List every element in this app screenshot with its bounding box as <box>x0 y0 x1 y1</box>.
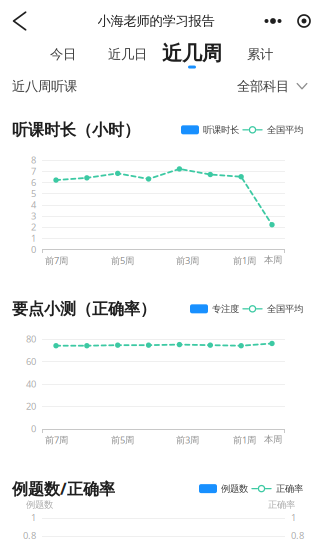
staticText: 累计 <box>247 46 273 62</box>
button[interactable]: More <box>259 10 287 32</box>
staticText: 5 <box>31 187 36 200</box>
staticText: 前3周 <box>176 254 199 267</box>
staticText: 例题数 <box>221 483 248 494</box>
staticText: 本周 <box>264 434 282 445</box>
staticText: 前1周 <box>233 254 256 267</box>
staticText: 前3周 <box>176 434 199 446</box>
staticText: 前1周 <box>233 434 256 446</box>
staticText: 2 <box>31 221 36 233</box>
staticText: 全部科目 <box>237 78 289 94</box>
button[interactable]: 近几周 <box>162 41 222 69</box>
button[interactable]: 累计 <box>247 46 273 65</box>
staticText: 80 <box>26 333 36 345</box>
staticText: 全国平均 <box>267 124 303 136</box>
staticText: 0.8 <box>291 529 304 542</box>
staticText: 7 <box>31 165 36 177</box>
staticText: 近几日 <box>108 46 147 62</box>
staticText: 60 <box>26 355 36 368</box>
staticText: 本周 <box>264 254 282 266</box>
staticText: 前7周 <box>45 434 68 446</box>
staticText: 1 <box>31 232 36 244</box>
button[interactable]: 今日 <box>50 46 76 65</box>
staticText: 近几周 <box>162 41 222 66</box>
staticText: 8 <box>31 154 36 166</box>
staticText: 听课时长 <box>203 124 239 136</box>
staticText: 0 <box>31 422 36 435</box>
staticText: 正确率 <box>268 499 295 510</box>
staticText: 前5周 <box>111 254 134 267</box>
staticText: 0 <box>31 243 36 255</box>
staticText: 正确率 <box>276 483 303 494</box>
staticText: 听课时长（小时） <box>12 120 140 140</box>
staticText: 专注度 <box>212 303 239 315</box>
staticText: 1 <box>291 511 296 524</box>
staticText: 要点小测（正确率） <box>12 299 156 319</box>
staticText: 40 <box>26 378 36 390</box>
staticText: 6 <box>31 176 36 188</box>
staticText: 3 <box>31 210 36 222</box>
button[interactable]: Close <box>287 10 321 32</box>
staticText: 4 <box>31 198 36 211</box>
staticText: 全国平均 <box>267 303 303 315</box>
staticText: 20 <box>26 400 36 412</box>
staticText: 0.8 <box>23 529 36 542</box>
staticText: 今日 <box>50 46 76 62</box>
staticText: 近八周听课 <box>12 78 77 94</box>
staticText: 例题数 <box>26 499 53 510</box>
staticText: 1 <box>31 511 36 524</box>
button[interactable]: 近几日 <box>108 46 147 65</box>
staticText: 前5周 <box>111 434 134 446</box>
staticText: 例题数/正确率 <box>12 478 115 499</box>
staticText: 小海老师的学习报告 <box>97 13 214 29</box>
button[interactable]: 全部科目 <box>237 78 308 94</box>
button[interactable]: Back <box>0 6 38 36</box>
staticText: 前7周 <box>45 254 68 267</box>
